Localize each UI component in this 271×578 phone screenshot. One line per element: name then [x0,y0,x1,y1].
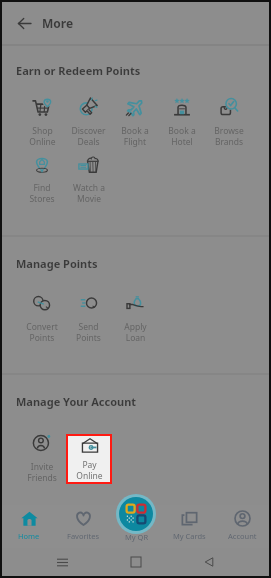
button[interactable]: My QR [116,494,156,534]
staticText: My Cards [173,531,206,541]
button[interactable]: Discover Deals [65,98,111,147]
button[interactable]: Recents [49,549,75,575]
button[interactable]: Browse Brands [205,98,252,147]
button[interactable]: Home [123,549,149,575]
staticText: Home [18,531,40,541]
button[interactable]: Back [196,549,222,575]
staticText: Book a Flight [121,125,149,147]
staticText: More [42,15,74,31]
staticText: Earn or Redeem Points [16,63,141,78]
button[interactable]: Watch a Movie [65,155,112,204]
staticText: Convert Points [26,321,58,343]
staticText: Invite Friends [27,461,57,483]
button[interactable]: Favorites [56,505,110,548]
staticText: Find Stores [29,182,55,204]
staticText: My QR [125,532,149,542]
button[interactable]: Home [2,505,56,548]
staticText: Send Points [76,321,101,343]
staticText: Watch a Movie [73,182,105,204]
button[interactable]: Book a Hotel [158,98,205,147]
button[interactable]: Invite Friends [19,434,65,483]
button[interactable]: Book a Flight [111,98,158,147]
button[interactable]: Back [10,9,38,37]
staticText: Favorites [67,531,100,541]
staticText: Account [228,531,257,541]
staticText: Pay Online [76,459,103,481]
staticText: Browse Brands [214,125,244,147]
button[interactable]: Apply Loan [112,294,159,343]
button[interactable]: Convert Points [19,294,65,343]
staticText: Apply Loan [124,321,147,343]
button[interactable]: Pay Online [66,434,112,484]
staticText: Shop Online [29,125,56,147]
button[interactable]: Send Points [65,294,112,343]
staticText: Discover Deals [71,125,106,147]
button[interactable]: Shop Online [19,98,65,147]
button[interactable]: Find Stores [19,155,65,204]
button[interactable]: Account [216,505,269,548]
staticText: Book a Hotel [168,125,196,147]
staticText: Manage Your Account [16,394,137,409]
button[interactable]: My Cards [163,505,216,548]
staticText: Manage Points [16,256,98,271]
